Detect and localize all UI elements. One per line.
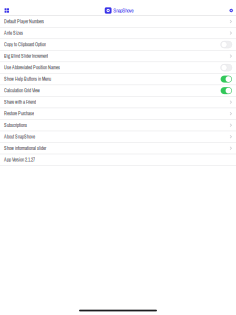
button[interactable]: Settings [227, 6, 236, 15]
button[interactable]: Big Blind Slider Increment [0, 51, 236, 62]
button[interactable]: Restore Purchase [0, 108, 236, 120]
staticText: Show informational slider [4, 145, 46, 151]
staticText: Copy to Clipboard Option [4, 41, 46, 48]
staticText: Ante Sizes [4, 30, 23, 36]
button[interactable]: Show informational slider [0, 143, 236, 154]
staticText: Default Player Numbers [4, 18, 44, 25]
staticText: Share with a Friend [4, 99, 36, 105]
button[interactable]: Show Help Buttons in Menu [0, 74, 236, 85]
staticText: Use Abbreviated Position Names [4, 64, 60, 71]
button[interactable]: Ante Sizes [0, 27, 236, 39]
button[interactable]: Sidebar [0, 6, 11, 15]
button[interactable]: About SnapShove [0, 131, 236, 143]
button[interactable]: Calculation Grid View [0, 85, 236, 97]
staticText: About SnapShove [4, 134, 35, 140]
button[interactable]: Default Player Numbers [0, 16, 236, 27]
staticText: Calculation Grid View [4, 87, 40, 94]
button[interactable]: Subscriptions [0, 120, 236, 131]
button[interactable]: App Version 2.1.27 [0, 154, 236, 166]
button[interactable]: Share with a Friend [0, 97, 236, 108]
staticText: Restore Purchase [4, 110, 34, 117]
staticText: App Version 2.1.27 [4, 157, 35, 163]
staticText: Big Blind Slider Increment [4, 53, 48, 59]
staticText: Subscriptions [4, 122, 27, 128]
button[interactable]: Copy to Clipboard Option [0, 39, 236, 50]
staticText: SnapShove [113, 7, 133, 14]
button[interactable]: Use Abbreviated Position Names [0, 62, 236, 74]
staticText: Show Help Buttons in Menu [4, 76, 51, 82]
